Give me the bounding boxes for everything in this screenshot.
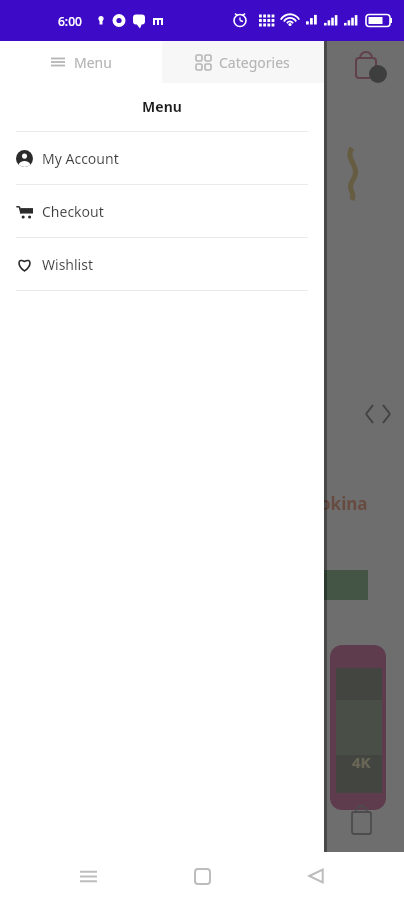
staticText: Menu <box>0 97 324 116</box>
staticText: Menu <box>74 53 112 72</box>
staticText: Checkout <box>42 202 104 221</box>
staticText: Categories <box>219 53 290 72</box>
button[interactable]: Checkout <box>0 185 324 237</box>
button[interactable]: Categories <box>162 41 324 83</box>
staticText: 6:00 <box>58 13 82 29</box>
button[interactable]: My Account <box>0 132 324 184</box>
button[interactable]: Back <box>298 858 334 894</box>
staticText: 4K <box>352 752 371 772</box>
button[interactable]: Menu <box>0 41 162 83</box>
staticText: My Account <box>42 149 119 168</box>
button[interactable]: Recent apps <box>70 858 106 894</box>
button[interactable]: Home <box>184 858 220 894</box>
button[interactable]: Wishlist <box>0 238 324 290</box>
staticText: okina <box>320 492 368 515</box>
staticText: Wishlist <box>42 255 93 274</box>
